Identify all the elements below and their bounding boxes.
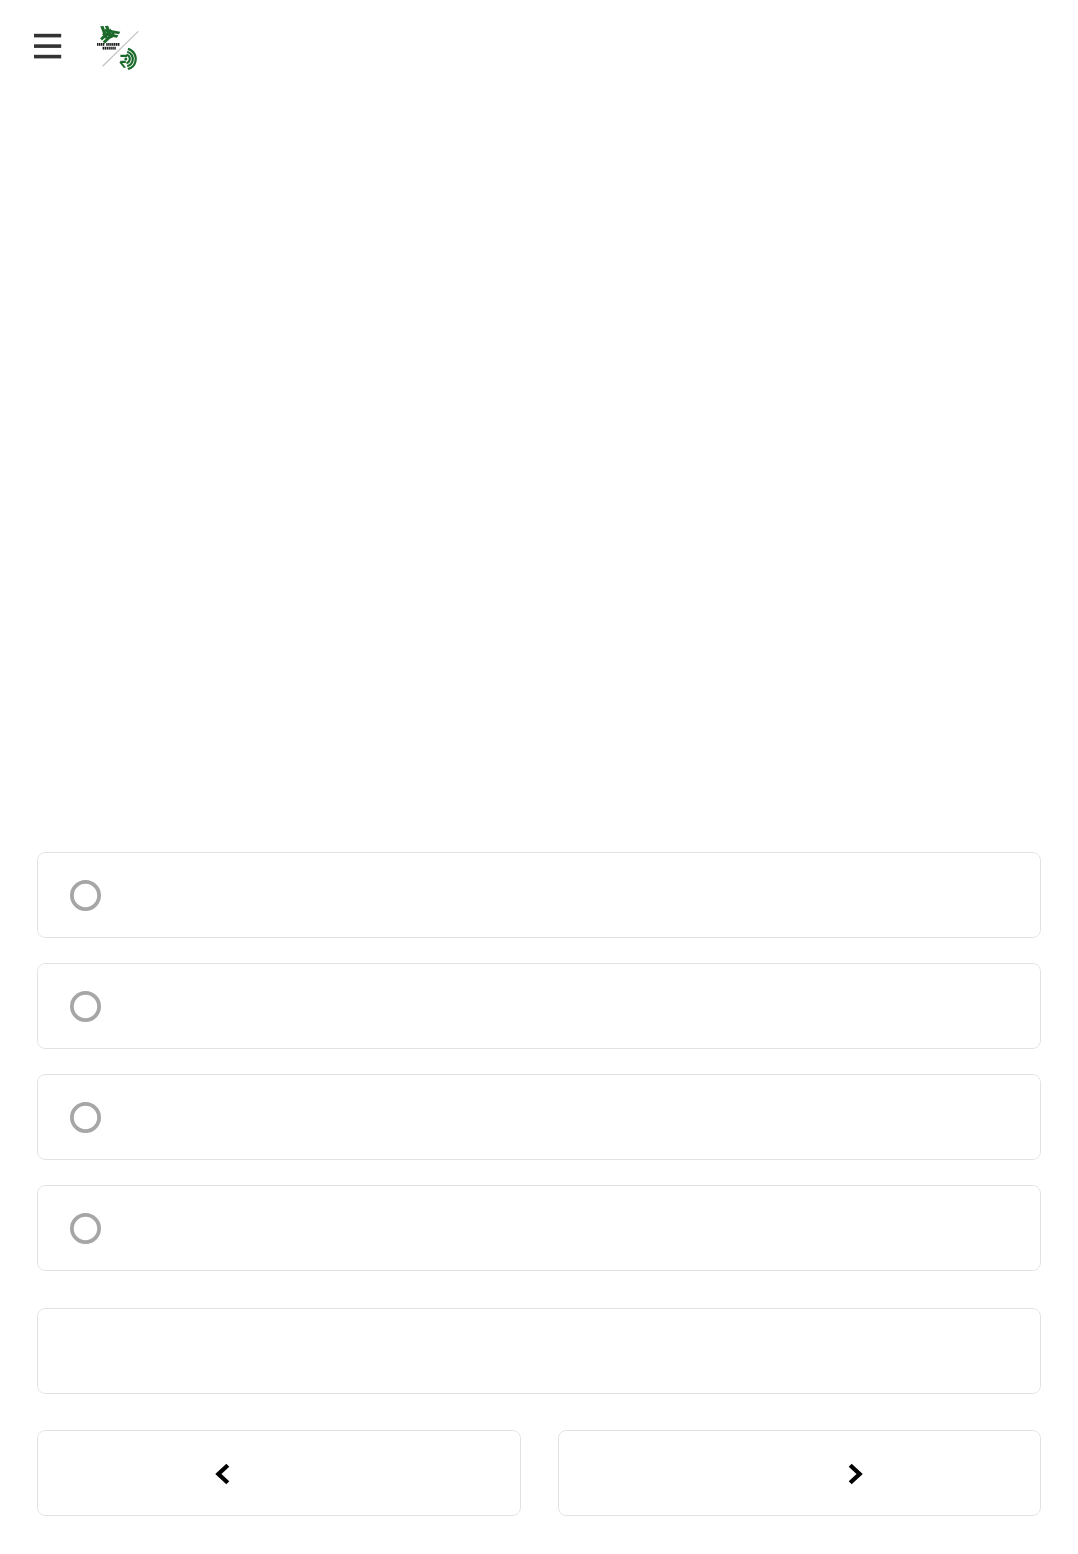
button[interactable]: Option one [37,852,1041,938]
button[interactable]: Previous step [37,1430,521,1516]
button[interactable]: Next step [558,1430,1041,1516]
button[interactable]: Open navigation menu [20,18,76,74]
button[interactable]: Option two [37,963,1041,1049]
button[interactable]: Option four [37,1185,1041,1271]
button[interactable]: Home [95,20,145,72]
button[interactable]: Option three [37,1074,1041,1160]
